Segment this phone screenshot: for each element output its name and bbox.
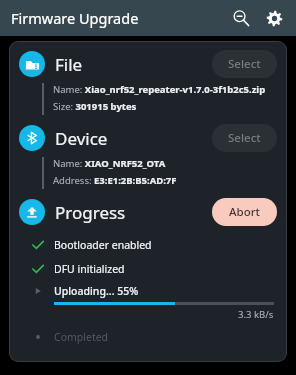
button[interactable]: Zoom out [226,3,256,33]
staticText: Abort [229,204,260,220]
button[interactable]: Select [212,50,277,78]
button[interactable]: Select [212,124,277,152]
staticText: DFU initialized [54,262,125,276]
staticText: Uploading... 55% [54,284,139,298]
staticText: Size: 301915 bytes [53,100,137,113]
staticText: Firmware Upgrade [11,8,139,28]
staticText: Select [228,130,261,146]
staticText: Completed [54,330,109,344]
staticText: Name: XIAO_NRF52_OTA [53,157,166,170]
staticText: 3.3 kB/s [238,308,274,321]
staticText: Select [228,56,261,72]
staticText: Address: E3:E1:2B:B5:AD:7F [53,174,177,187]
staticText: Name: Xiao_nrf52_repeater-v1.7.0-3f1b2c5… [53,83,266,96]
staticText: Bootloader enabled [54,238,152,252]
button[interactable]: Settings [259,3,289,33]
staticText: File [55,53,83,76]
staticText: Progress [55,201,126,224]
button[interactable]: Abort [212,198,277,226]
staticText: Device [55,127,108,150]
